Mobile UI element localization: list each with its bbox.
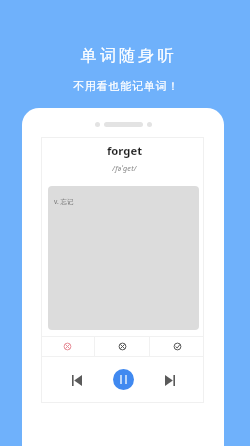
staticText: 不用看也能记单词！: [73, 79, 180, 93]
button[interactable]: Next: [157, 367, 183, 393]
button[interactable]: Mark as forgotten: [41, 337, 94, 356]
staticText: /fəˈget/: [43, 163, 206, 173]
button[interactable]: Mark as unsure: [95, 337, 149, 356]
button[interactable]: Mark as known: [150, 337, 204, 356]
staticText: 单词随身听: [79, 46, 175, 66]
button[interactable]: Pause: [113, 369, 134, 390]
button[interactable]: Previous: [64, 367, 90, 393]
staticText: forget: [43, 143, 206, 158]
staticText: v. 忘记: [54, 197, 74, 206]
